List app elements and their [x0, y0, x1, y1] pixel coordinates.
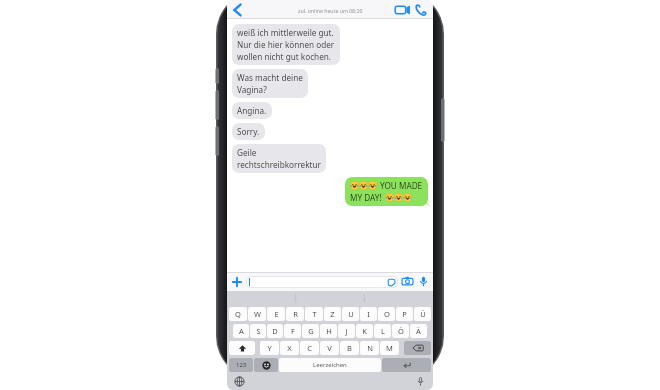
staticText: V [327, 343, 332, 353]
button[interactable]: N [360, 341, 379, 355]
button[interactable]: Return [382, 358, 431, 372]
button[interactable]: Camera [401, 275, 414, 288]
button[interactable]: V [320, 341, 339, 355]
staticText: Ä [416, 326, 421, 336]
button[interactable]: A [233, 324, 249, 338]
button[interactable]: P [396, 307, 413, 321]
button[interactable]: Emoji [254, 358, 278, 372]
button[interactable]: L [374, 324, 391, 338]
button[interactable]: Geile [232, 144, 326, 173]
staticText: U [348, 309, 354, 319]
button[interactable]: T [305, 307, 323, 321]
button[interactable]: Change language [234, 376, 245, 387]
button[interactable]: E [267, 307, 285, 321]
staticText: F [291, 326, 295, 336]
button[interactable]: 123 [229, 358, 253, 372]
staticText: rechtschreibkorrektur [237, 159, 321, 170]
button[interactable]: X [280, 341, 299, 355]
button[interactable]: K [356, 324, 373, 338]
button[interactable]: M [380, 341, 399, 355]
button[interactable]: Z [324, 307, 341, 321]
staticText: A [239, 326, 244, 336]
staticText: H [326, 326, 332, 336]
button[interactable]: C [300, 341, 319, 355]
staticText: W [254, 309, 261, 319]
button[interactable]: weiß ich mittlerweile gut. [232, 24, 340, 65]
button[interactable]: Ä [410, 324, 427, 338]
staticText: YOU MADE [380, 180, 423, 191]
button[interactable]: I [360, 307, 377, 321]
staticText: P [402, 309, 407, 319]
staticText: Ö [398, 326, 404, 336]
staticText: N [367, 343, 373, 353]
button[interactable]: Voice message [417, 275, 430, 288]
staticText: I [367, 309, 370, 319]
staticText: weiß ich mittlerweile gut. [237, 27, 334, 38]
button[interactable]: Sorry. [232, 123, 265, 140]
button[interactable]: Audio call [413, 2, 429, 18]
button[interactable]: S [250, 324, 266, 338]
staticText: S [256, 326, 261, 336]
button[interactable]: R [286, 307, 304, 321]
staticText: Z [330, 309, 335, 319]
staticText: Vagina? [237, 84, 267, 95]
button[interactable]: YOU MADE [345, 177, 428, 206]
button[interactable]: U [342, 307, 359, 321]
button[interactable]: W [248, 307, 266, 321]
button[interactable]: Backspace [404, 341, 431, 355]
staticText: C [307, 343, 312, 353]
staticText: J [345, 326, 348, 336]
staticText: R [293, 309, 298, 319]
staticText: Geile [237, 147, 257, 158]
staticText: D [272, 326, 278, 336]
button[interactable]: Stickers [387, 278, 396, 287]
button[interactable]: Ö [392, 324, 409, 338]
button[interactable]: Shift [229, 341, 255, 355]
button[interactable]: Ü [414, 307, 431, 321]
staticText: X [287, 343, 292, 353]
staticText: M [386, 343, 393, 353]
button[interactable]: Angina. [232, 102, 272, 119]
button[interactable]: Y [260, 341, 279, 355]
staticText: Sorry. [237, 126, 260, 137]
staticText: T [312, 309, 317, 319]
button[interactable]: Back [229, 2, 245, 18]
staticText: Y [267, 343, 272, 353]
staticText: B [347, 343, 352, 353]
button[interactable]: O [378, 307, 395, 321]
staticText: G [308, 326, 314, 336]
staticText: Was macht deine [237, 72, 303, 83]
button[interactable]: Dictation [415, 376, 426, 387]
button[interactable]: Add attachment [230, 275, 244, 289]
staticText: 123 [236, 361, 247, 369]
button[interactable]: Stickers [246, 276, 398, 288]
staticText: zul. online heute um 08:20 [298, 7, 363, 14]
staticText: Ü [420, 309, 426, 319]
staticText: O [384, 309, 390, 319]
staticText: Leerzeichen [313, 361, 347, 369]
staticText: Nur die hier können oder [237, 39, 335, 50]
button[interactable]: F [284, 324, 301, 338]
button[interactable]: Leerzeichen [279, 358, 381, 372]
button[interactable]: G [302, 324, 319, 338]
button[interactable]: B [340, 341, 359, 355]
button[interactable]: Q [229, 307, 247, 321]
staticText: K [362, 326, 367, 336]
button[interactable]: Video call [394, 2, 410, 18]
staticText: L [381, 326, 385, 336]
staticText: wollen nicht gut kochen. [237, 51, 332, 62]
button[interactable]: Was macht deine [232, 69, 308, 98]
button[interactable]: D [267, 324, 283, 338]
staticText: MY DAY! [350, 192, 382, 203]
button[interactable]: J [338, 324, 355, 338]
staticText: Q [235, 309, 241, 319]
staticText: E [274, 309, 279, 319]
button[interactable]: H [320, 324, 337, 338]
staticText: Angina. [237, 105, 267, 116]
